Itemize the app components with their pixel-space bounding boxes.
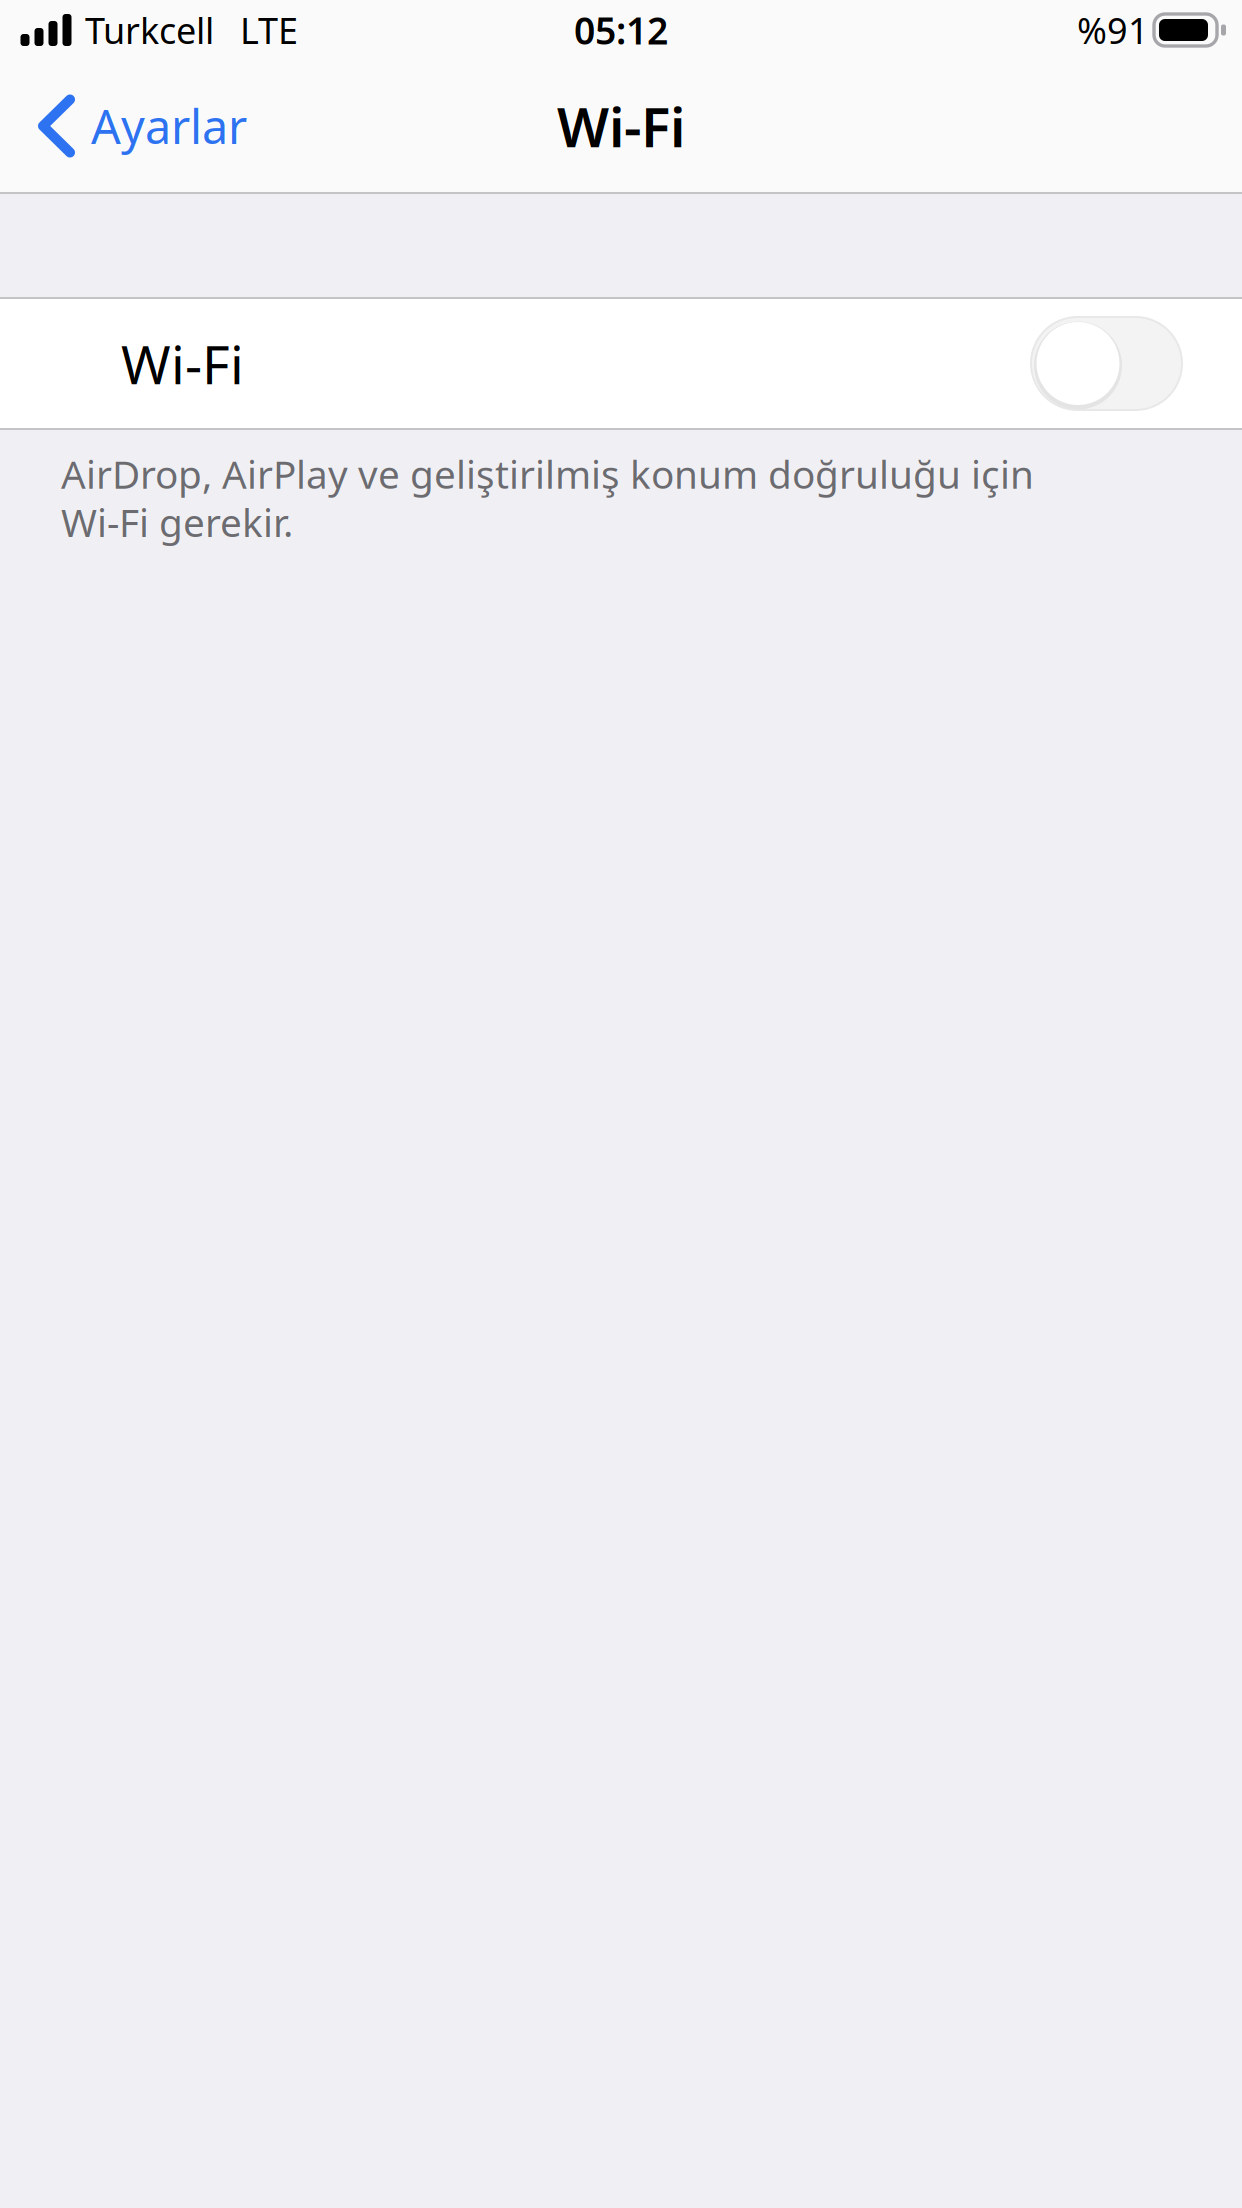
staticText: Ayarlar [91,95,247,157]
staticText: LTE [240,6,298,54]
staticText: 05:12 [574,5,668,55]
staticText: AirDrop, AirPlay ve geliştirilmiş konum … [61,448,1034,548]
staticText: Wi-Fi [121,328,244,399]
staticText: Wi-Fi [557,90,685,162]
staticText: %91 [1077,6,1149,54]
button[interactable]: Wi-Fi açık/kapalı [1031,317,1242,410]
button[interactable]: Ayarlar [0,60,271,192]
staticText: Turkcell [85,6,214,54]
button[interactable]: Wi-Fi [0,299,1242,428]
